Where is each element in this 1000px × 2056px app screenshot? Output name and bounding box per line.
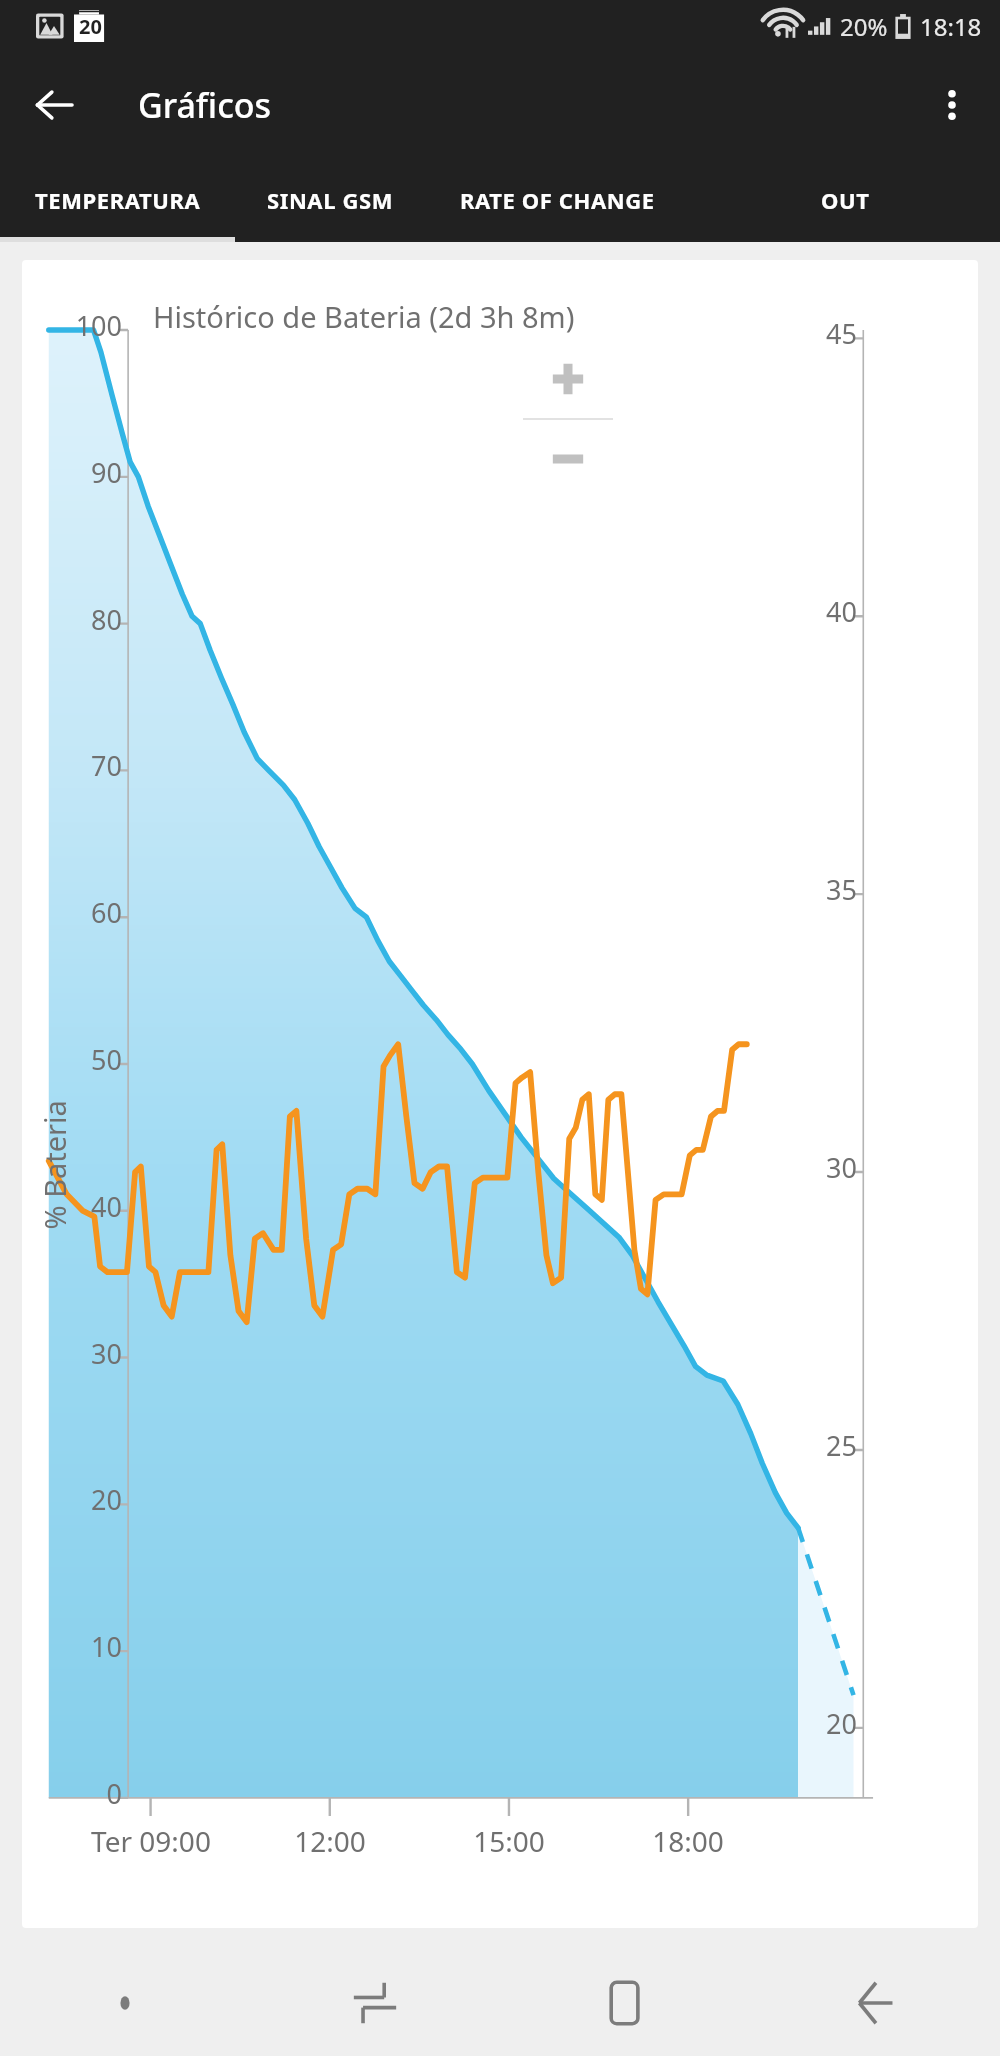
staticText: 60 (32, 894, 122, 931)
staticText: 20 (79, 13, 102, 40)
staticText: RATE OF CHANGE (460, 185, 655, 215)
staticText: SINAL GSM (267, 185, 394, 215)
button[interactable]: Zoom in (523, 340, 613, 418)
staticText: 18:18 (920, 10, 982, 43)
staticText: 12:00 (220, 1822, 440, 1860)
staticText: 30 (32, 1335, 122, 1372)
staticText: Ter 09:00 (41, 1822, 261, 1860)
staticText: 70 (32, 747, 122, 784)
staticText: 100 (32, 307, 122, 344)
staticText: 20 (767, 1705, 857, 1742)
button[interactable]: Recents (250, 1950, 500, 2056)
staticText: 18:00 (578, 1822, 798, 1860)
button[interactable]: Histórico de Bateria (2d 3h 8m) (22, 260, 978, 1928)
staticText: 40 (32, 1188, 122, 1225)
staticText: 20% (840, 10, 888, 43)
staticText: OUT (821, 185, 870, 215)
staticText: 40 (767, 593, 857, 630)
button[interactable]: OUT (690, 157, 1000, 242)
staticText: Gráficos (138, 82, 272, 128)
button[interactable]: TEMPERATURA (0, 157, 235, 242)
button[interactable]: More options (920, 73, 984, 137)
staticText: 0 (32, 1775, 122, 1812)
staticText: TEMPERATURA (35, 185, 201, 215)
button[interactable]: Home (500, 1950, 750, 2056)
button[interactable]: SINAL GSM (235, 157, 425, 242)
staticText: 35 (767, 871, 857, 908)
staticText: 45 (767, 315, 857, 352)
staticText: Histórico de Bateria (2d 3h 8m) (153, 297, 575, 336)
staticText: 30 (767, 1149, 857, 1186)
button[interactable]: Zoom out (523, 420, 613, 498)
button[interactable]: Menu (0, 1950, 250, 2056)
staticText: 80 (32, 601, 122, 638)
staticText: 90 (32, 454, 122, 491)
staticText: 20 (32, 1481, 122, 1518)
staticText: 15:00 (399, 1822, 619, 1860)
staticText: 10 (32, 1628, 122, 1665)
staticText: 25 (767, 1427, 857, 1464)
button[interactable]: RATE OF CHANGE (425, 157, 690, 242)
button[interactable]: Back (750, 1950, 1000, 2056)
staticText: % Bateria (34, 1099, 73, 1229)
staticText: 50 (32, 1041, 122, 1078)
button[interactable]: Back (22, 73, 86, 137)
